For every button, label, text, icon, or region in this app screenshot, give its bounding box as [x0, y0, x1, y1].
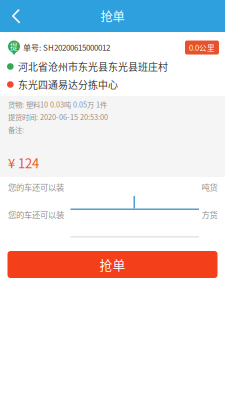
- staticText: 备注:: [8, 124, 24, 135]
- staticText: 您的车还可以装: [8, 208, 64, 220]
- staticText: 0.0公里: [189, 42, 215, 53]
- button[interactable]: Back: [0, 0, 34, 32]
- staticText: 东光四通易达分拣中心: [18, 77, 118, 92]
- staticText: 单号: SH20200615000012: [23, 41, 110, 53]
- staticText: 提货时间: 2020-06-15 20:53:00: [8, 111, 108, 122]
- staticText: 方货: [201, 208, 217, 220]
- staticText: 抢单: [99, 255, 125, 274]
- staticText: ¥ 124: [8, 153, 39, 172]
- button[interactable]: 抢单: [7, 251, 217, 278]
- staticText: 您的车还可以装: [8, 181, 64, 193]
- staticText: 抢单: [100, 7, 124, 25]
- staticText: 提: [10, 41, 18, 52]
- staticText: 吨货: [201, 181, 217, 193]
- staticText: 河北省沧州市东光县东光县班庄村: [18, 59, 168, 74]
- staticText: 货物: 塑料10 0.03吨 0.05万 1件: [8, 99, 107, 110]
